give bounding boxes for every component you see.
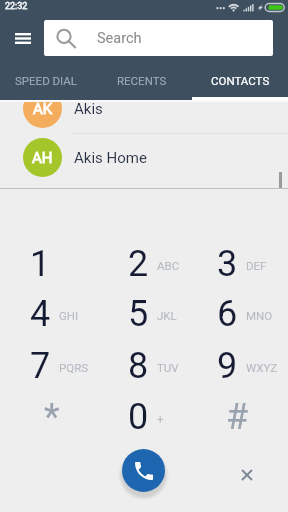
staticText: MNO <box>246 309 273 322</box>
staticText: Akis <box>74 100 103 118</box>
staticText: SPEED DIAL <box>15 74 78 87</box>
button[interactable]: SPEED DIAL <box>0 62 96 100</box>
button[interactable]: 5 <box>98 288 194 338</box>
button[interactable]: Call <box>122 449 165 492</box>
button[interactable]: Open navigation menu <box>2 16 43 62</box>
button[interactable]: * <box>0 391 96 441</box>
button[interactable]: CONTACTS <box>192 62 288 100</box>
button[interactable]: 2 <box>98 238 194 288</box>
button[interactable]: 1 <box>0 238 96 288</box>
button[interactable]: 7 <box>0 340 96 390</box>
button[interactable]: # <box>187 391 283 441</box>
button[interactable]: 4 <box>0 288 96 338</box>
button[interactable]: RECENTS <box>96 62 192 100</box>
staticText: Akis Home <box>74 149 147 167</box>
button[interactable]: AH <box>0 132 288 182</box>
staticText: 1 <box>30 243 51 285</box>
button[interactable]: 6 <box>187 288 283 338</box>
staticText: 6 <box>217 293 238 335</box>
staticText: # <box>226 396 249 438</box>
button[interactable]: Search <box>44 20 273 56</box>
staticText: 22:32 <box>5 1 28 12</box>
staticText: 0 <box>128 396 149 438</box>
staticText: + <box>157 412 164 425</box>
staticText: CONTACTS <box>211 74 270 87</box>
staticText: 9 <box>217 345 238 387</box>
staticText: WXYZ <box>246 361 278 374</box>
staticText: 7 <box>30 345 51 387</box>
staticText: 5 <box>128 293 149 335</box>
staticText: 4 <box>30 293 51 335</box>
button[interactable]: 0 <box>98 391 194 441</box>
button[interactable]: 9 <box>187 340 283 390</box>
staticText: * <box>44 396 60 438</box>
staticText: AK <box>33 100 53 118</box>
staticText: PQRS <box>59 361 89 374</box>
staticText: 8 <box>128 345 149 387</box>
staticText: ABC <box>157 259 180 272</box>
staticText: JKL <box>157 309 177 322</box>
button[interactable]: Delete <box>227 455 266 494</box>
staticText: TUV <box>157 361 179 374</box>
staticText: 2 <box>128 243 149 285</box>
button[interactable]: 3 <box>187 238 283 288</box>
button[interactable]: AK <box>0 83 288 133</box>
staticText: RECENTS <box>117 74 167 87</box>
staticText: Search <box>97 30 142 47</box>
staticText: GHI <box>59 309 79 322</box>
staticText: DEF <box>246 259 267 272</box>
staticText: 3 <box>217 243 238 285</box>
staticText: AH <box>32 149 53 167</box>
button[interactable]: 8 <box>98 340 194 390</box>
